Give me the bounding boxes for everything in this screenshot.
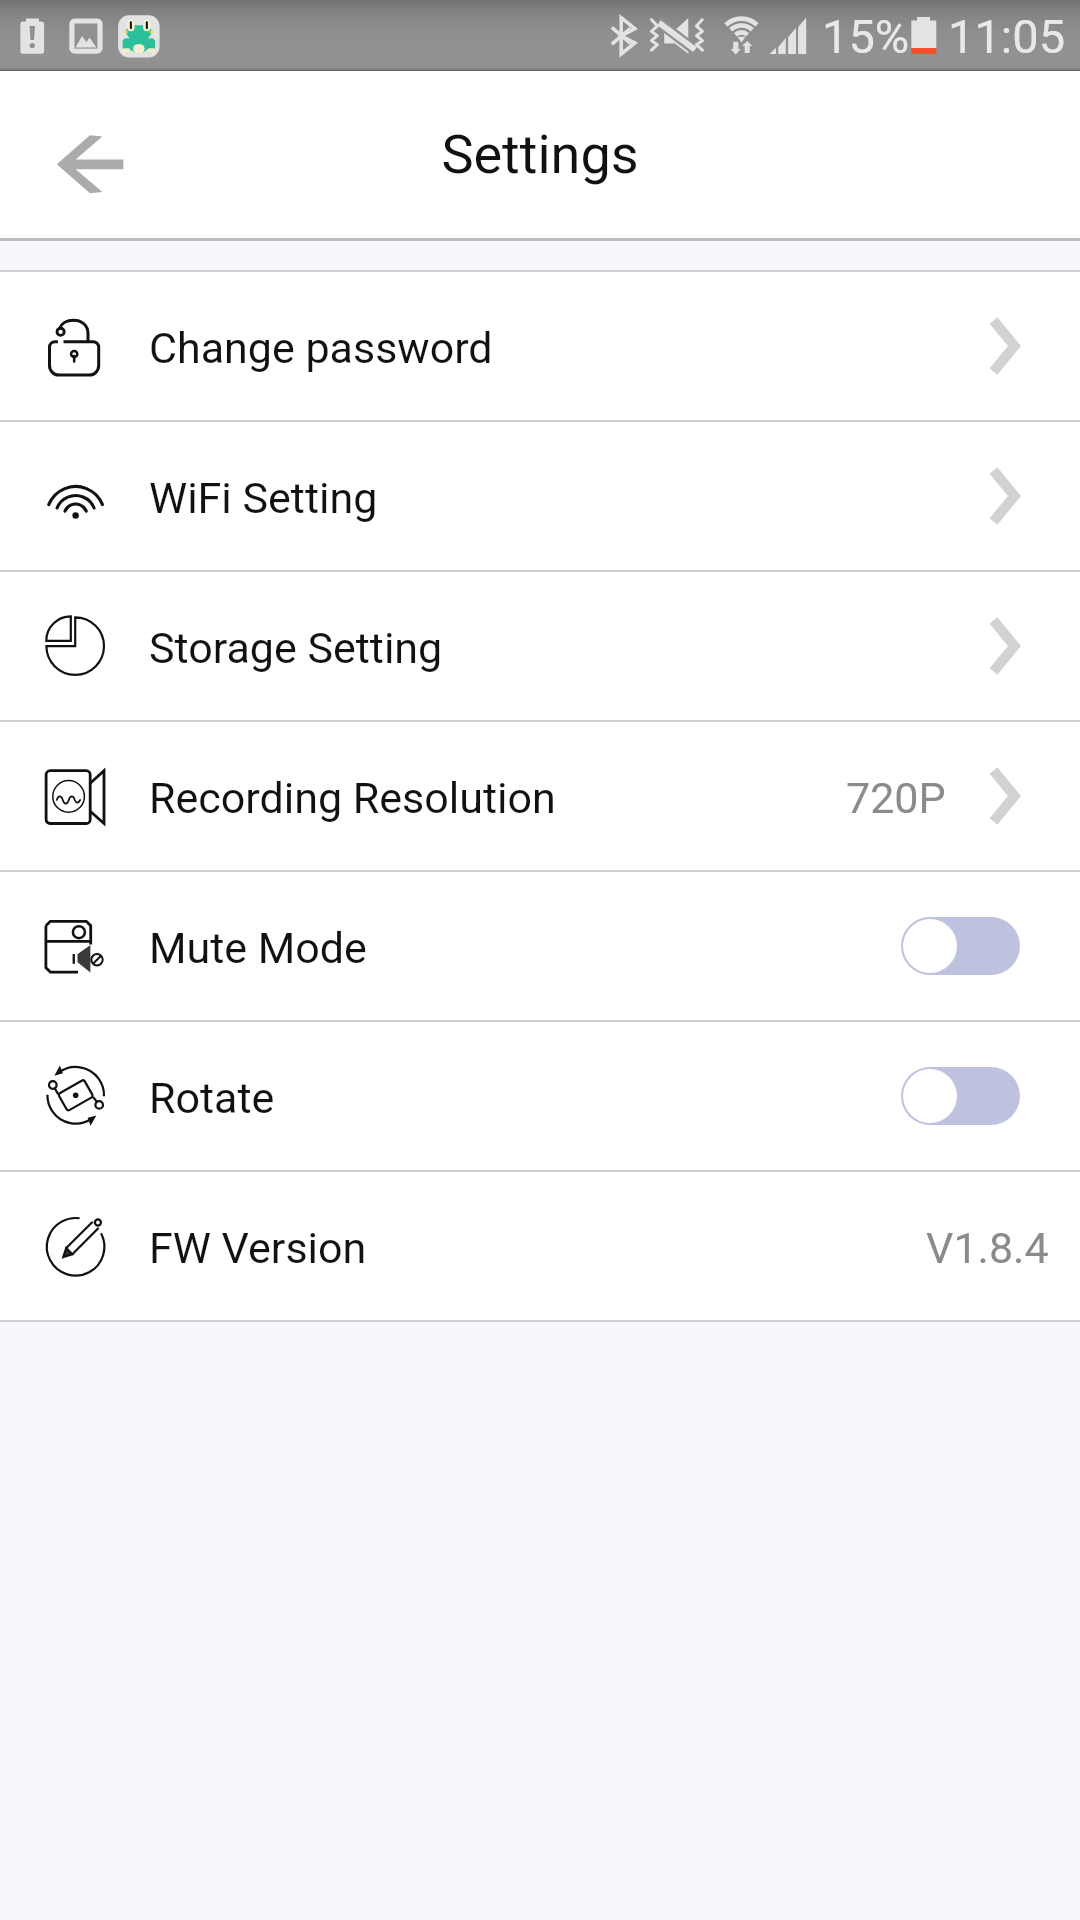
staticText: 11:05 (948, 9, 1066, 64)
button[interactable]: Open Change password (989, 272, 1023, 420)
staticText: Recording Resolution (149, 773, 556, 823)
staticText: Settings (441, 123, 639, 186)
button[interactable]: Open WiFi Setting (989, 422, 1023, 570)
button[interactable]: Mute Mode (0, 872, 1080, 1020)
button[interactable]: Mute Mode toggle, off (901, 917, 1020, 975)
staticText: V1.8.4 (926, 1223, 1049, 1273)
staticText: Rotate (149, 1073, 275, 1123)
button[interactable]: Recording Resolution (0, 722, 1080, 870)
button[interactable]: WiFi Setting (0, 422, 1080, 570)
button[interactable]: Rotate (0, 1022, 1080, 1170)
staticText: 720P (846, 773, 946, 823)
button[interactable]: Storage Setting (0, 572, 1080, 720)
button[interactable]: Open Recording Resolution (989, 722, 1023, 870)
staticText: FW Version (149, 1223, 367, 1273)
button[interactable]: Open Storage Setting (989, 572, 1023, 720)
button[interactable]: Change password (0, 272, 1080, 420)
staticText: 15% (822, 9, 910, 64)
button[interactable]: Rotate toggle, off (901, 1067, 1020, 1125)
button[interactable]: Back (0, 71, 170, 238)
staticText: Mute Mode (149, 923, 367, 973)
staticText: WiFi Setting (149, 473, 378, 523)
staticText: Storage Setting (149, 623, 443, 673)
staticText: Change password (149, 323, 493, 373)
button[interactable]: FW Version (0, 1172, 1080, 1320)
